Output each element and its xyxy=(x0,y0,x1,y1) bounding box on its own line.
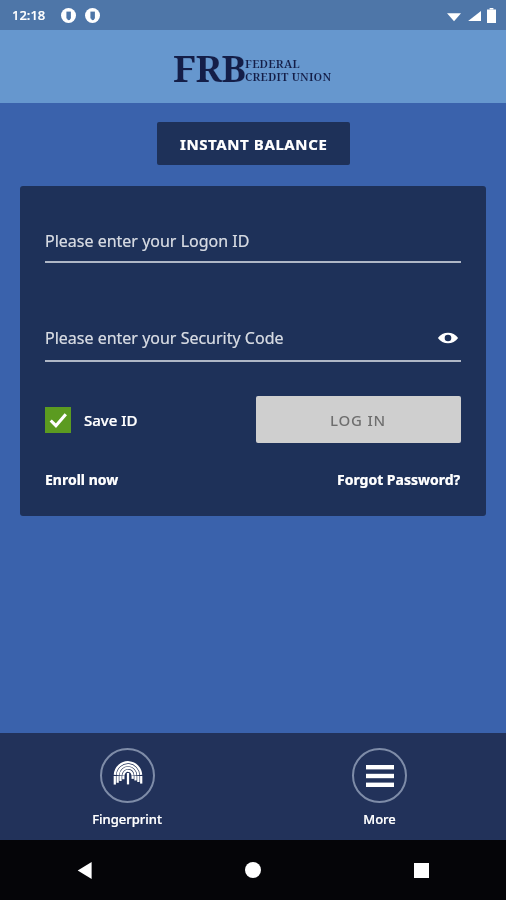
staticText: Please enter your Security Code xyxy=(45,327,284,349)
staticText: FRB xyxy=(173,42,246,92)
button[interactable]: Save ID xyxy=(45,403,138,437)
staticText: LOG IN xyxy=(330,410,387,430)
staticText: 12:18 xyxy=(12,6,46,24)
button[interactable]: LOG IN xyxy=(256,396,461,443)
button[interactable]: Back xyxy=(0,840,168,900)
button[interactable]: Please enter your Logon ID xyxy=(45,230,461,263)
staticText: Please enter your Logon ID xyxy=(45,230,250,252)
button[interactable]: Recent apps xyxy=(337,840,506,900)
button[interactable]: Show password xyxy=(435,325,461,351)
button[interactable]: Fingerprint login xyxy=(76,746,178,830)
staticText: CREDIT UNION xyxy=(245,69,332,84)
button[interactable]: INSTANT BALANCE xyxy=(157,122,350,165)
staticText: Save ID xyxy=(84,410,138,430)
button[interactable]: Please enter your Security Code xyxy=(45,325,461,362)
staticText: INSTANT BALANCE xyxy=(180,134,328,154)
staticText: Fingerprint xyxy=(92,810,162,828)
button[interactable]: Enroll now xyxy=(45,467,119,492)
button[interactable]: More options xyxy=(336,746,423,830)
staticText: FEDERAL xyxy=(245,56,301,71)
button[interactable]: Forgot Password? xyxy=(337,467,461,492)
staticText: More xyxy=(363,810,396,828)
button[interactable]: Home xyxy=(168,840,337,900)
